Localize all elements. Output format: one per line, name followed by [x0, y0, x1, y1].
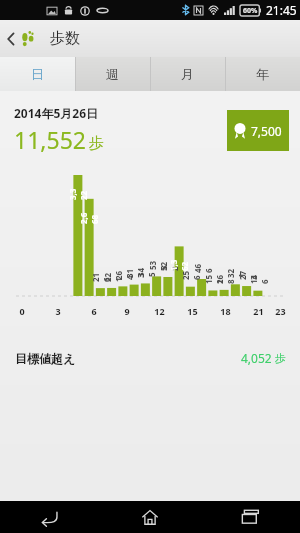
staticText: 4,052 [241, 350, 272, 366]
staticText: 264 [113, 268, 133, 280]
staticText: 256 [180, 268, 200, 280]
button[interactable]: 目標値超え [0, 345, 300, 371]
staticText: 221 [102, 270, 122, 282]
staticText: 21:45 [266, 2, 297, 18]
staticText: 歩数 [50, 29, 80, 48]
button[interactable]: 月 [150, 57, 225, 91]
button[interactable]: Back [0, 20, 41, 57]
staticText: 313 [124, 266, 144, 278]
staticText: 6 [91, 305, 97, 317]
button[interactable]: Home [100, 501, 200, 533]
button[interactable]: 週 [75, 57, 150, 91]
staticText: 目標値超え [15, 351, 76, 366]
staticText: 週 [106, 66, 119, 82]
staticText: 152 [203, 272, 223, 284]
button[interactable]: Recent apps [200, 501, 300, 533]
staticText: 9 [124, 305, 130, 317]
staticText: 11,552 [14, 124, 86, 155]
staticText: 歩 [89, 134, 104, 153]
staticText: 2,668 [78, 212, 100, 224]
staticText: 7,500 [251, 123, 282, 139]
staticText: 273 [237, 268, 257, 280]
staticText: 538 [147, 258, 167, 270]
staticText: 年 [256, 66, 269, 82]
staticText: 60% [243, 6, 258, 16]
staticText: 月 [181, 66, 194, 82]
staticText: 1,362 [168, 259, 190, 271]
button[interactable]: 年 [225, 57, 300, 91]
button[interactable]: 7,500 [227, 110, 289, 151]
staticText: 3 [55, 305, 61, 317]
staticText: 日 [31, 66, 44, 82]
staticText: 3,322 [67, 188, 89, 200]
staticText: 168 [214, 272, 234, 284]
staticText: 23 [275, 305, 286, 317]
button[interactable]: Back [0, 501, 100, 533]
staticText: 216 [90, 270, 110, 282]
staticText: 15 [187, 305, 198, 317]
staticText: 321 [225, 266, 245, 278]
button[interactable]: 日 [0, 57, 75, 91]
staticText: 522 [158, 259, 178, 271]
staticText: 0 [19, 305, 25, 317]
staticText: 18 [220, 305, 231, 317]
staticText: 345 [135, 265, 155, 277]
staticText: 21 [253, 305, 264, 317]
staticText: 12 [154, 305, 165, 317]
staticText: 2014年5月26日 [14, 105, 99, 121]
staticText: 歩 [275, 351, 286, 365]
staticText: 466 [192, 261, 212, 273]
staticText: 146 [248, 272, 268, 284]
